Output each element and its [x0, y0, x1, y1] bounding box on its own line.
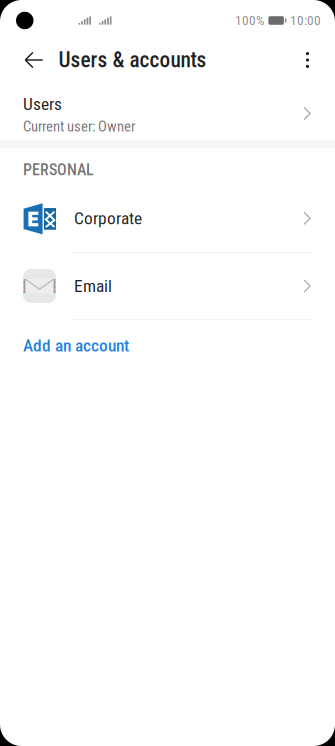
- button[interactable]: More options: [285, 36, 335, 84]
- staticText: Add an account: [23, 335, 129, 356]
- staticText: Current user: Owner: [23, 118, 135, 135]
- button[interactable]: Email: [0, 253, 335, 320]
- staticText: Corporate: [74, 208, 142, 228]
- staticText: Email: [74, 276, 112, 296]
- staticText: PERSONAL: [23, 160, 94, 179]
- button[interactable]: Users: [0, 84, 335, 140]
- staticText: Users: [23, 94, 62, 114]
- button[interactable]: Corporate: [0, 184, 335, 253]
- staticText: 100%: [235, 13, 264, 28]
- staticText: 10:00: [290, 13, 321, 28]
- button[interactable]: Add an account: [0, 320, 335, 371]
- button[interactable]: Back: [0, 36, 58, 84]
- staticText: Users & accounts: [58, 47, 206, 72]
